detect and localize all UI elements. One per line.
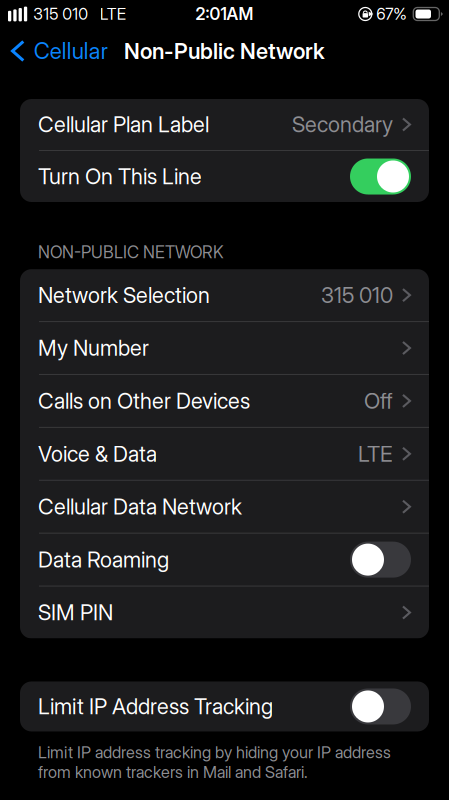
button[interactable]: Turn On This Line: [350, 158, 411, 194]
staticText: Calls on Other Devices: [38, 388, 250, 414]
button[interactable]: Cellular Data Network: [20, 481, 429, 533]
button[interactable]: Network Selection: [20, 269, 429, 321]
staticText: My Number: [38, 335, 149, 361]
staticText: Data Roaming: [38, 546, 169, 573]
staticText: 315 010: [33, 4, 88, 24]
staticText: Secondary: [292, 111, 393, 137]
staticText: LTE: [100, 4, 126, 24]
staticText: 315 010: [321, 282, 393, 308]
button[interactable]: Cellular: [0, 31, 108, 70]
staticText: Limit IP Address Tracking: [38, 693, 273, 719]
button[interactable]: Data Roaming: [350, 542, 411, 578]
staticText: Voice & Data: [38, 441, 157, 467]
button[interactable]: Cellular Plan Label: [20, 99, 429, 150]
button[interactable]: My Number: [20, 322, 429, 374]
staticText: Cellular: [34, 37, 108, 64]
staticText: Non-Public Network: [124, 38, 325, 64]
staticText: 2:01AM: [195, 4, 253, 24]
staticText: NON-PUBLIC NETWORK: [38, 242, 224, 262]
staticText: Off: [364, 388, 393, 414]
button[interactable]: Limit IP Address Tracking: [350, 688, 411, 724]
staticText: Cellular Plan Label: [38, 111, 209, 137]
staticText: LTE: [358, 441, 393, 467]
staticText: Turn On This Line: [38, 163, 202, 189]
staticText: Limit IP address tracking by hiding your…: [38, 742, 391, 782]
button[interactable]: Calls on Other Devices: [20, 375, 429, 427]
staticText: Cellular Data Network: [38, 494, 242, 520]
staticText: SIM PIN: [38, 599, 113, 625]
staticText: Network Selection: [38, 282, 210, 308]
button[interactable]: Voice & Data: [20, 428, 429, 480]
staticText: 67%: [376, 4, 407, 24]
button[interactable]: SIM PIN: [20, 587, 429, 638]
